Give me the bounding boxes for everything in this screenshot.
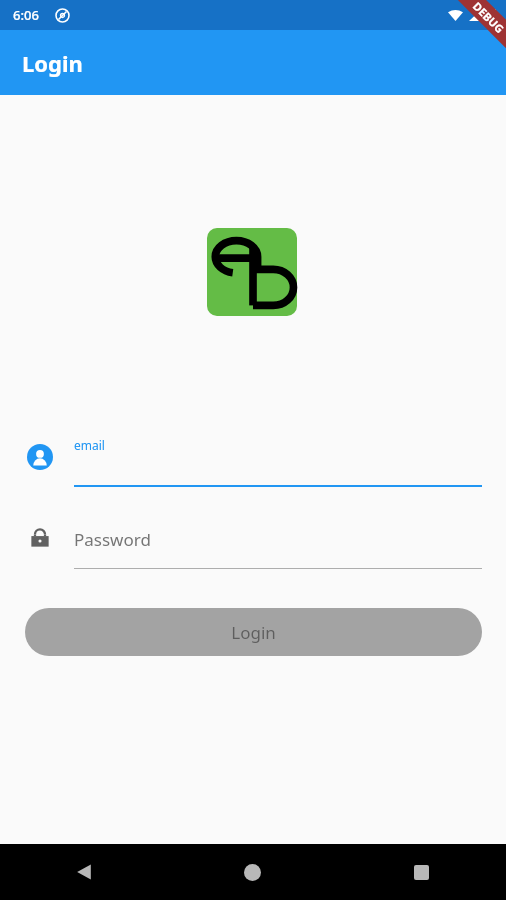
staticText: DEBUG xyxy=(470,0,506,36)
button[interactable]: Back xyxy=(0,844,168,900)
button[interactable]: Recent apps xyxy=(337,844,506,900)
staticText: Login xyxy=(231,621,276,644)
button[interactable]: Password xyxy=(0,514,506,569)
staticText: email xyxy=(74,437,105,453)
button[interactable]: Home xyxy=(168,844,337,900)
other: Email xyxy=(27,444,53,470)
staticText: Password xyxy=(74,528,151,551)
button[interactable]: Login xyxy=(25,608,482,656)
other: Password xyxy=(28,526,52,550)
button[interactable]: Email xyxy=(0,423,506,491)
staticText: Login xyxy=(22,48,83,78)
staticText: 6:06 xyxy=(13,6,39,24)
